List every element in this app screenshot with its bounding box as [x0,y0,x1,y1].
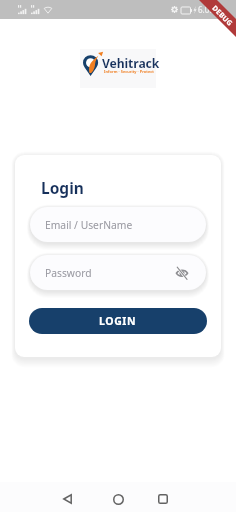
staticText: DEBUG [209,3,235,29]
button[interactable]: Recent apps [148,482,178,512]
staticText: LOGIN [99,314,137,328]
staticText: Password [45,266,92,280]
staticText: Email / UserName [45,218,133,232]
button[interactable]: LOGIN [29,308,207,334]
staticText: Inform · Security · Protect [104,69,154,74]
button[interactable]: Show password [174,265,190,281]
button[interactable]: Password [30,255,206,290]
staticText: Vehitrack [102,55,160,72]
staticText: 6.07 [198,4,214,15]
button[interactable]: Home [103,482,133,512]
staticText: Login [41,177,84,198]
button[interactable]: Back [52,482,82,512]
button[interactable]: Email / UserName [30,207,206,242]
